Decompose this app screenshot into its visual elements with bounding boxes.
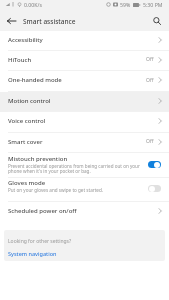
- button[interactable]: Motion control: [0, 92, 169, 112]
- staticText: Mistouch prevention: [8, 155, 68, 163]
- button[interactable]: HiTouch: [0, 51, 169, 71]
- button[interactable]: System navigation: [8, 250, 57, 257]
- staticText: Off: [146, 56, 154, 63]
- staticText: Accessibility: [8, 36, 43, 44]
- staticText: Smart assistance: [23, 17, 76, 26]
- staticText: 5:30 PM: [143, 1, 163, 8]
- staticText: Gloves mode: [8, 179, 46, 187]
- button[interactable]: Back: [0, 12, 23, 30]
- button[interactable]: Gloves mode: [0, 178, 169, 202]
- button[interactable]: Search: [148, 12, 166, 30]
- staticText: Looking for other settings?: [8, 238, 72, 245]
- staticText: Prevent accidental operations from being…: [8, 163, 144, 174]
- staticText: Off: [146, 77, 154, 84]
- staticText: 59%: [120, 1, 131, 8]
- staticText: Off: [146, 138, 154, 145]
- staticText: Scheduled power on/off: [8, 207, 77, 215]
- button[interactable]: Accessibility: [0, 31, 169, 51]
- button[interactable]: One-handed mode: [0, 71, 169, 92]
- staticText: HiTouch: [8, 56, 32, 64]
- staticText: Voice control: [8, 117, 46, 125]
- staticText: 0.00K/s: [24, 1, 42, 8]
- staticText: Smart cover: [8, 138, 43, 146]
- staticText: System navigation: [8, 250, 57, 257]
- staticText: Put on your gloves and swipe to get star…: [8, 187, 103, 193]
- button[interactable]: Smart cover: [0, 133, 169, 153]
- button[interactable]: Voice control: [0, 112, 169, 133]
- button[interactable]: Mistouch prevention: [0, 153, 169, 178]
- button[interactable]: Scheduled power on/off: [0, 202, 169, 223]
- staticText: Motion control: [8, 97, 51, 105]
- staticText: One-handed mode: [8, 76, 62, 84]
